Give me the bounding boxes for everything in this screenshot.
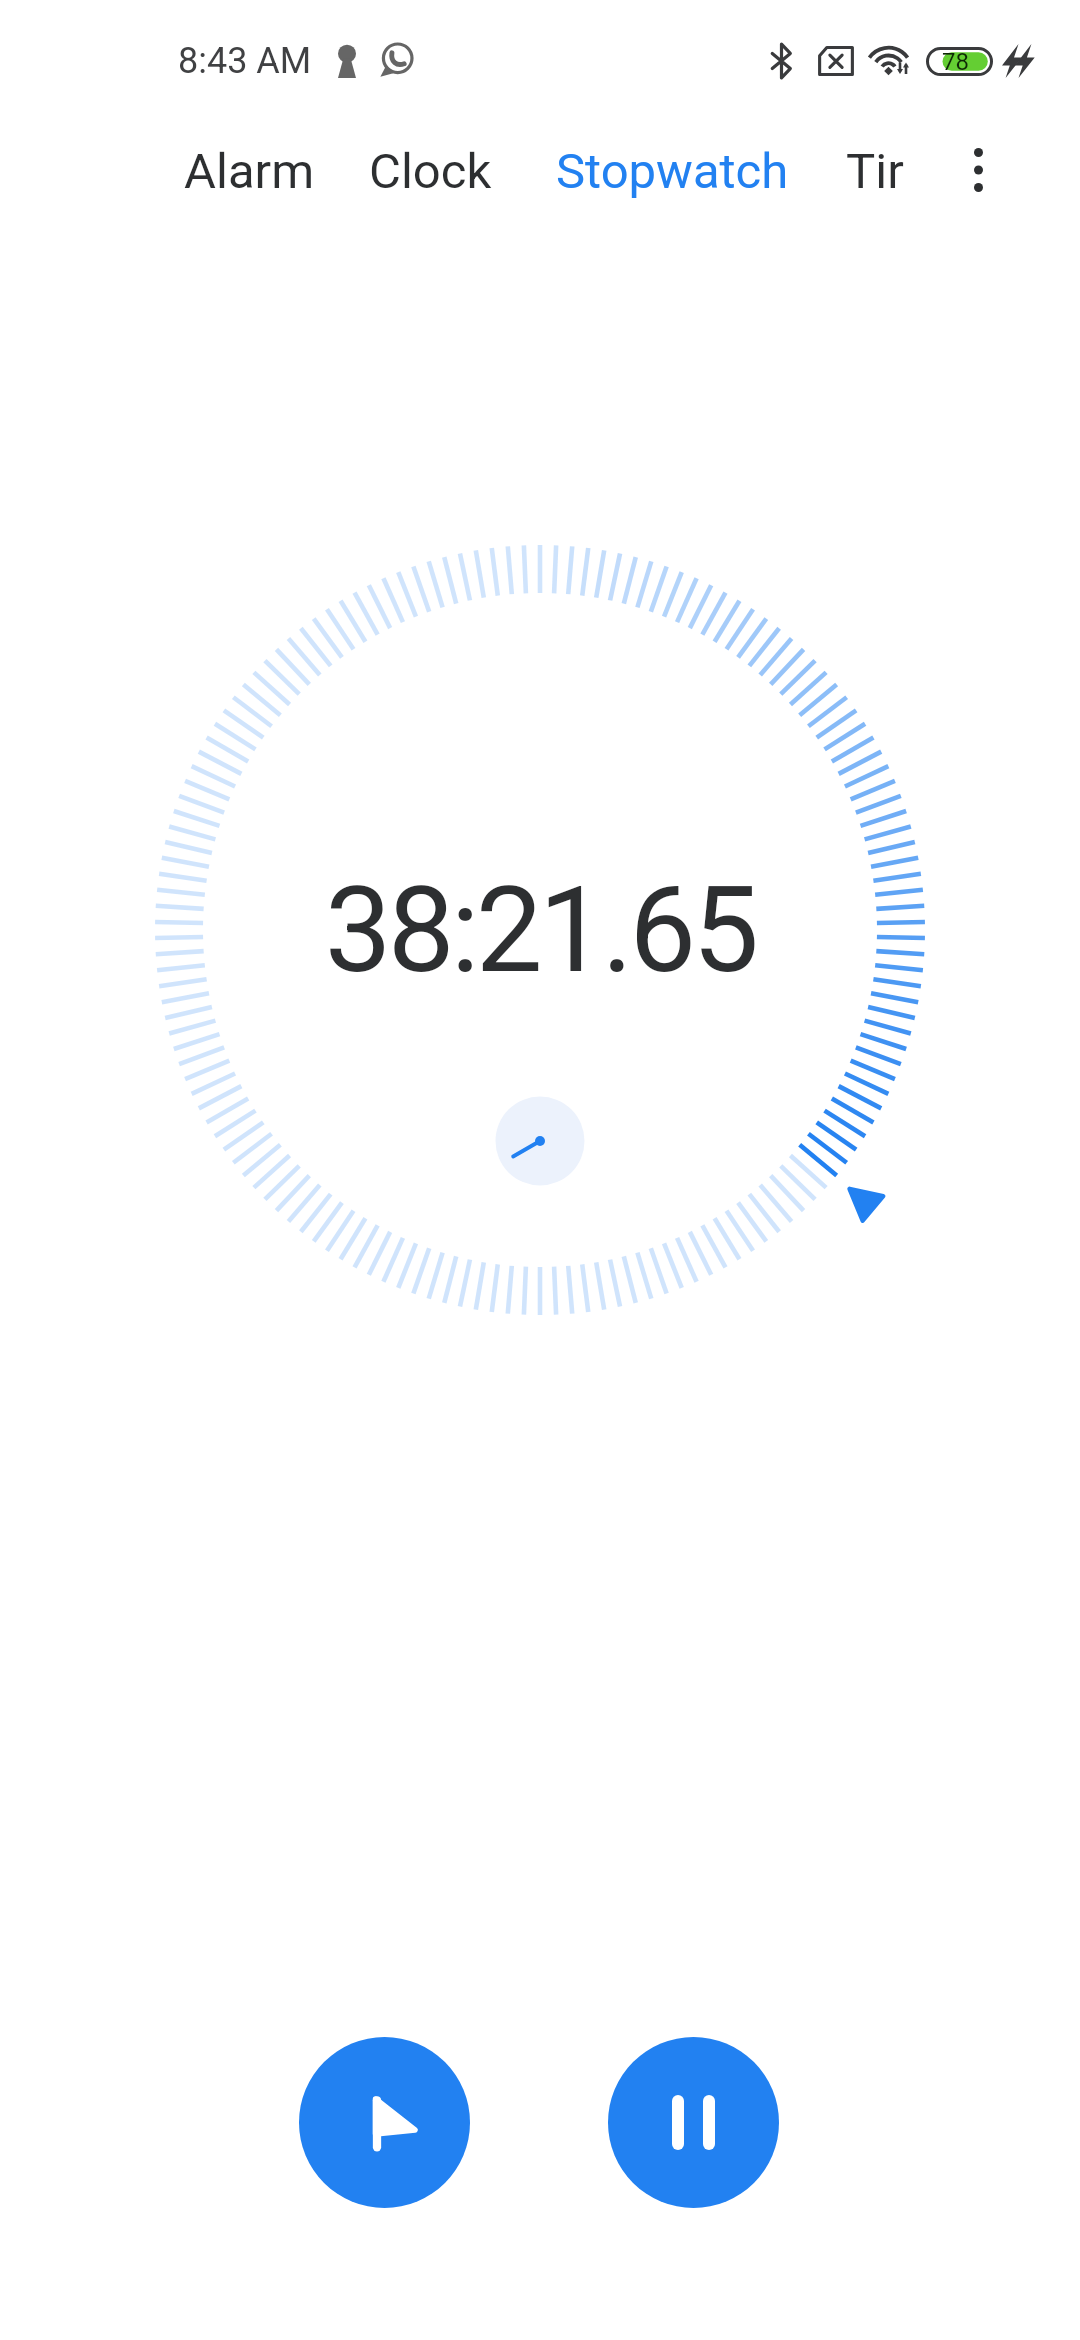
staticText: 38:21.65 (0, 861, 1080, 1000)
staticText: Clock (369, 143, 492, 200)
staticText: 8:43 AM (178, 40, 312, 82)
staticText: Tir (846, 143, 904, 200)
button[interactable]: More options (938, 128, 1018, 212)
button[interactable]: Lap (299, 2037, 470, 2208)
staticText: Stopwatch (556, 143, 789, 200)
button[interactable]: Pause (608, 2037, 779, 2208)
button[interactable]: Stopwatch (536, 125, 809, 218)
button[interactable]: Tir (826, 125, 924, 218)
staticText: Alarm (184, 143, 315, 200)
button[interactable]: Clock (349, 125, 512, 218)
staticText: 78 (942, 48, 969, 76)
button[interactable]: Alarm (164, 125, 335, 218)
